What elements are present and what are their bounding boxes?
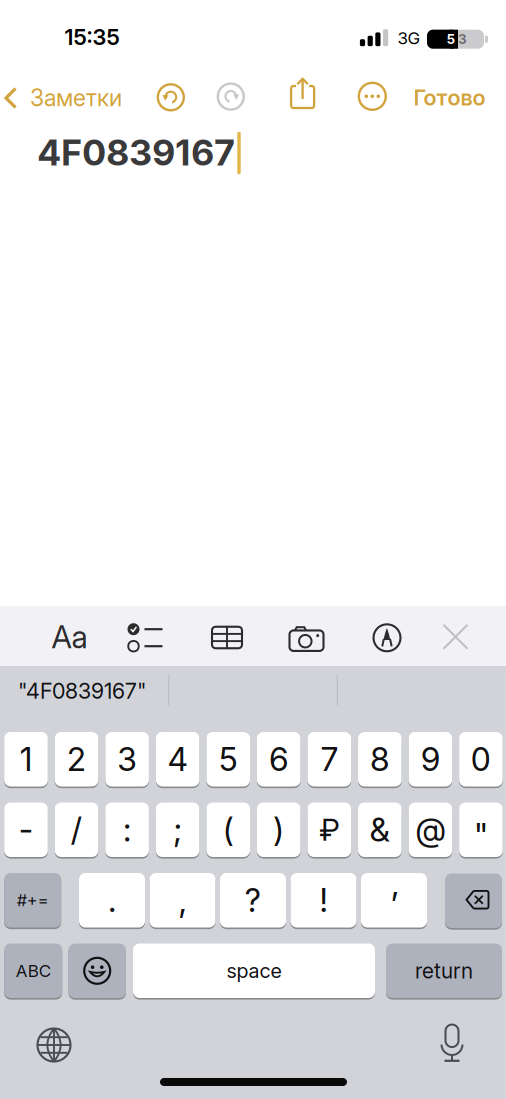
button[interactable]: 7 xyxy=(307,731,351,787)
button[interactable]: - xyxy=(4,801,48,858)
button[interactable] xyxy=(68,942,126,999)
staticText: 0 xyxy=(470,740,491,779)
button[interactable]: , xyxy=(149,872,215,928)
button[interactable] xyxy=(32,1023,76,1067)
button[interactable]: 8 xyxy=(358,731,402,787)
button[interactable] xyxy=(433,615,477,659)
staticText: 1 xyxy=(19,740,32,779)
button[interactable] xyxy=(123,615,167,659)
button[interactable] xyxy=(205,615,249,659)
staticText: 5 xyxy=(446,31,455,47)
staticText: . xyxy=(107,881,116,920)
staticText: @ xyxy=(415,810,446,849)
staticText: ’ xyxy=(390,885,398,924)
staticText: 4F0839167 xyxy=(37,131,235,174)
button[interactable] xyxy=(445,872,502,929)
button[interactable]: @ xyxy=(409,801,452,858)
staticText: #+= xyxy=(17,890,49,910)
button[interactable]: ; xyxy=(156,801,199,858)
staticText: Готово xyxy=(413,84,485,111)
button[interactable]: 5 xyxy=(206,731,250,787)
staticText: "4F0839167" xyxy=(18,678,146,704)
staticText: 15:35 xyxy=(64,24,119,50)
button[interactable]: ( xyxy=(206,801,250,858)
button[interactable]: Заметки xyxy=(0,68,130,128)
staticText: & xyxy=(369,810,390,849)
staticText: return xyxy=(415,958,473,983)
button[interactable] xyxy=(284,616,328,660)
staticText: ; xyxy=(173,810,183,849)
staticText: ₽ xyxy=(319,811,339,848)
button[interactable]: : xyxy=(105,801,149,858)
staticText: / xyxy=(70,810,82,849)
button[interactable]: return xyxy=(386,942,502,999)
staticText: , xyxy=(178,881,187,920)
button[interactable]: ABC xyxy=(4,942,62,999)
staticText: ! xyxy=(319,881,328,920)
staticText: 9 xyxy=(420,740,440,779)
button[interactable]: & xyxy=(358,801,402,858)
staticText: ( xyxy=(222,810,234,849)
button[interactable]: #+= xyxy=(4,872,61,928)
staticText: " xyxy=(473,816,488,855)
button[interactable]: Aa xyxy=(39,609,99,665)
button[interactable]: Готово xyxy=(389,75,506,119)
staticText: 5 xyxy=(218,740,238,779)
button[interactable]: 9 xyxy=(409,731,452,787)
button[interactable]: ₽ xyxy=(307,801,351,858)
button[interactable] xyxy=(365,616,409,660)
staticText: 2 xyxy=(66,740,86,779)
button[interactable]: space xyxy=(133,942,375,999)
button[interactable]: ) xyxy=(257,801,300,858)
staticText: ) xyxy=(273,810,285,849)
button[interactable]: 0 xyxy=(459,731,503,787)
staticText: Aa xyxy=(51,618,87,656)
button[interactable]: ’ xyxy=(361,872,427,928)
button[interactable]: / xyxy=(55,801,98,858)
button[interactable] xyxy=(355,79,389,113)
staticText: ABC xyxy=(16,960,51,981)
staticText: space xyxy=(226,959,281,983)
button[interactable] xyxy=(154,80,188,114)
staticText: 6 xyxy=(269,740,289,779)
button[interactable]: . xyxy=(79,872,145,928)
staticText: - xyxy=(18,810,33,849)
button[interactable]: 2 xyxy=(55,731,98,787)
button[interactable] xyxy=(286,76,320,116)
staticText: 3 xyxy=(117,740,137,779)
staticText: 3 xyxy=(458,31,467,47)
button[interactable]: "4F0839167" xyxy=(0,663,168,719)
button[interactable]: ! xyxy=(290,872,356,928)
button[interactable]: 4 xyxy=(156,731,199,787)
staticText: 4 xyxy=(167,740,188,779)
staticText: Заметки xyxy=(30,84,122,112)
button[interactable]: " xyxy=(459,801,503,858)
button[interactable] xyxy=(430,1023,474,1067)
staticText: 7 xyxy=(320,740,338,779)
staticText: : xyxy=(123,810,132,849)
staticText: 8 xyxy=(370,740,390,779)
button[interactable]: 6 xyxy=(257,731,300,787)
button[interactable]: 3 xyxy=(105,731,149,787)
button[interactable]: ? xyxy=(220,872,286,928)
button[interactable] xyxy=(214,80,248,114)
staticText: 3G xyxy=(397,28,420,48)
staticText: ? xyxy=(244,881,261,920)
button[interactable]: 1 xyxy=(4,731,48,787)
